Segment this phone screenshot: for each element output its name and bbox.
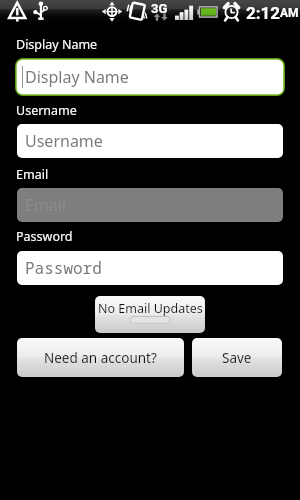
staticText: Username: [16, 102, 77, 119]
staticText: Need an account?: [44, 349, 157, 367]
button[interactable]: No Email Updates: [95, 296, 205, 333]
button[interactable]: Username: [17, 124, 283, 158]
staticText: 3G: [151, 1, 168, 16]
staticText: AM: [280, 6, 299, 20]
button[interactable]: Password: [17, 251, 283, 285]
staticText: Username: [25, 130, 103, 152]
button[interactable]: Email: [17, 188, 283, 222]
staticText: Display Name: [16, 36, 98, 53]
button[interactable]: Display Name: [15, 58, 285, 96]
button[interactable]: Need an account?: [17, 338, 184, 377]
staticText: No Email Updates: [98, 300, 203, 317]
staticText: Display Name: [25, 66, 129, 88]
staticText: 2:12: [246, 3, 281, 23]
button[interactable]: Save: [192, 338, 282, 377]
staticText: Save: [222, 349, 252, 367]
staticText: Password: [16, 228, 73, 245]
staticText: Password: [25, 257, 102, 279]
staticText: Email: [25, 194, 67, 216]
staticText: Email: [16, 166, 49, 183]
